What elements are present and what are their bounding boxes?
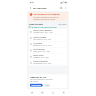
button[interactable]: Suggested for you bbox=[28, 74, 68, 88]
staticText: Profile strength bbox=[29, 23, 43, 25]
button[interactable]: Add summary bbox=[30, 84, 43, 87]
staticText: Freelance Designer bbox=[33, 61, 48, 63]
staticText: Add a short summary to the top of bbox=[30, 79, 53, 81]
button[interactable] bbox=[58, 89, 69, 96]
staticText: Self employed · 2012 – 2013 bbox=[33, 63, 52, 65]
staticText: Later bbox=[45, 84, 49, 86]
staticText: your resume. bbox=[30, 81, 39, 83]
staticText: Studio Orbit · 2014 – 2016 bbox=[33, 51, 50, 53]
staticText: 9:41 bbox=[30, 1, 34, 4]
staticText: Helio Systems · 2018 – 2021 bbox=[33, 38, 51, 40]
staticText: Visual Designer bbox=[33, 48, 45, 50]
staticText: Design Intern bbox=[33, 54, 44, 57]
button[interactable]: Your resume is 42% complete bbox=[28, 12, 68, 21]
button[interactable] bbox=[27, 89, 37, 96]
button[interactable] bbox=[48, 89, 58, 96]
button[interactable]: Back bbox=[28, 6, 32, 10]
staticText: Verified by 3 recruiters this week bbox=[31, 26, 56, 28]
button[interactable]: Later bbox=[44, 84, 50, 87]
staticText: Northwind Labs · 2021 – Now bbox=[33, 32, 52, 34]
staticText: My Resume bbox=[33, 6, 47, 10]
button[interactable]: Visual Designer bbox=[28, 47, 68, 53]
button[interactable]: Product Designer bbox=[28, 35, 68, 41]
staticText: Suggested for you bbox=[30, 76, 46, 78]
staticText: See details bbox=[58, 23, 67, 25]
staticText: Pixelworks · 2013 – 2014 bbox=[33, 57, 49, 59]
staticText: Add summary bbox=[32, 84, 41, 86]
staticText: Senior Product Designer bbox=[33, 30, 52, 32]
staticText: Product Designer bbox=[33, 36, 47, 38]
button[interactable]: Design Intern bbox=[28, 54, 68, 60]
staticText: Add work experience and skills so bbox=[33, 16, 59, 18]
button[interactable]: Senior Product Designer bbox=[28, 29, 68, 35]
button[interactable]: UI Designer bbox=[28, 41, 68, 47]
staticText: UI Designer bbox=[33, 42, 42, 44]
staticText: recruiters can find you faster. bbox=[33, 18, 55, 20]
staticText: Your resume is 42% complete bbox=[33, 13, 60, 15]
button[interactable]: See details bbox=[58, 23, 67, 25]
staticText: Brightpath Co · 2016 – 2018 bbox=[33, 44, 51, 46]
button[interactable] bbox=[37, 89, 48, 96]
button[interactable]: Search bbox=[59, 6, 63, 10]
button[interactable]: Freelance Designer bbox=[28, 60, 68, 66]
button[interactable]: More options bbox=[64, 6, 68, 10]
